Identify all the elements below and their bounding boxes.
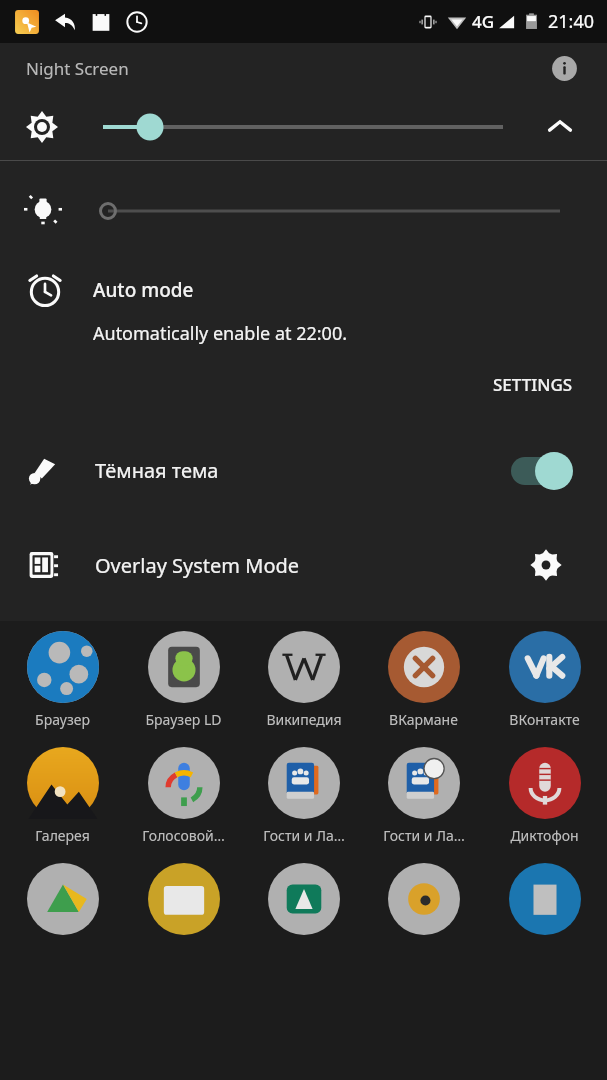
button[interactable]: Overlay System Mode xyxy=(0,519,607,611)
button[interactable]: Settings xyxy=(525,544,567,586)
button[interactable]: Википедия xyxy=(246,629,361,731)
staticText: Гости и Ла… xyxy=(383,826,465,845)
staticText: ВКонтакте xyxy=(509,710,580,729)
staticText: Automatically enable at 22:00. xyxy=(93,321,347,346)
button[interactable] xyxy=(366,861,481,937)
button[interactable] xyxy=(126,861,241,937)
button[interactable]: Тёмная тема xyxy=(0,422,607,519)
button[interactable]: Collapse xyxy=(0,93,607,160)
button[interactable]: ВКармане xyxy=(366,629,481,731)
staticText: Браузер xyxy=(35,710,90,729)
staticText: Night Screen xyxy=(26,57,129,80)
button[interactable] xyxy=(246,861,361,937)
staticText: Диктофон xyxy=(510,826,579,845)
button[interactable] xyxy=(487,861,602,937)
staticText: 21:40 xyxy=(548,9,595,34)
staticText: Overlay System Mode xyxy=(95,552,300,579)
staticText: ВКармане xyxy=(389,710,458,729)
button[interactable]: Гости и Ла… xyxy=(366,745,481,847)
button[interactable] xyxy=(0,161,607,261)
button[interactable]: SETTINGS xyxy=(485,367,581,402)
button[interactable]: Браузер xyxy=(5,629,120,731)
staticText: Википедия xyxy=(266,710,342,729)
button[interactable]: Диктофон xyxy=(487,745,602,847)
button[interactable]: Голосовой… xyxy=(126,745,241,847)
staticText: Тёмная тема xyxy=(95,457,219,484)
button[interactable]: ВКонтакте xyxy=(487,629,602,731)
staticText: Голосовой… xyxy=(142,826,225,845)
button[interactable]: Гости и Ла… xyxy=(246,745,361,847)
button[interactable] xyxy=(5,861,120,937)
button[interactable]: Collapse xyxy=(543,110,577,144)
button[interactable]: Info xyxy=(549,53,579,83)
staticText: Браузер LD xyxy=(145,710,222,729)
staticText: Галерея xyxy=(35,826,90,845)
button[interactable]: Галерея xyxy=(5,745,120,847)
staticText: 4G xyxy=(472,10,495,33)
button[interactable]: Auto mode xyxy=(0,261,607,319)
staticText: Гости и Ла… xyxy=(263,826,345,845)
button[interactable]: Браузер LD xyxy=(126,629,241,731)
staticText: Auto mode xyxy=(93,277,194,303)
staticText: SETTINGS xyxy=(493,373,573,396)
